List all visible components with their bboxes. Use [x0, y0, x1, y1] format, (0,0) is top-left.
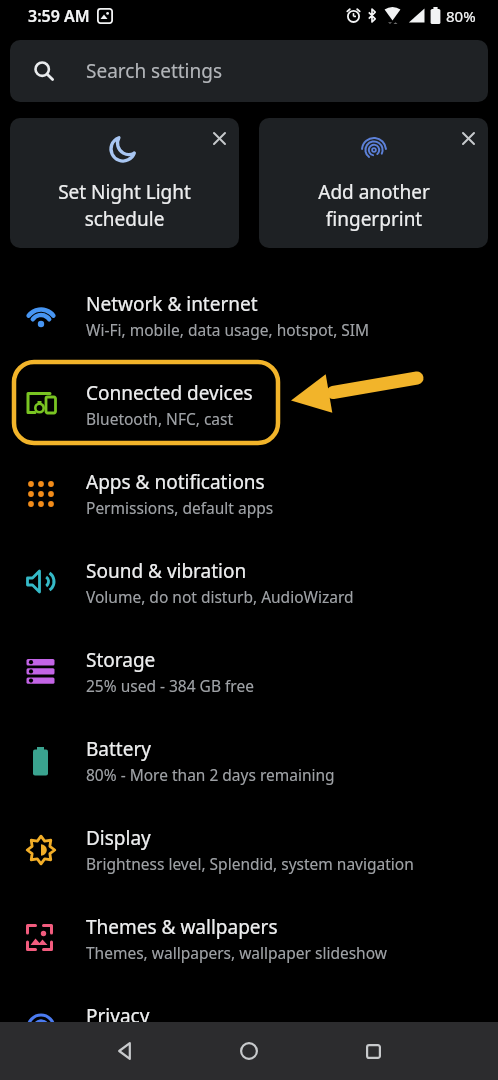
staticText: Set Night Light schedule [58, 179, 191, 232]
button[interactable] [186, 1022, 311, 1080]
staticText: 25% used - 384 GB free [86, 675, 254, 696]
button[interactable] [448, 118, 488, 158]
staticText: Network & internet [86, 291, 258, 317]
staticText: Brightness level, Splendid, system navig… [86, 853, 414, 874]
button[interactable] [199, 118, 239, 158]
staticText: Wi-Fi, mobile, data usage, hotspot, SIM [86, 319, 370, 340]
staticText: Themes & wallpapers [86, 914, 278, 940]
button[interactable]: Display [0, 805, 498, 894]
button[interactable]: Network & internet [0, 271, 498, 360]
button[interactable] [62, 1022, 186, 1080]
staticText: Add another fingerprint [318, 179, 430, 232]
staticText: 80% [446, 6, 476, 26]
button[interactable]: Apps & notifications [0, 449, 498, 538]
staticText: Storage [86, 647, 156, 673]
button[interactable]: Set Night Light schedule [10, 118, 239, 248]
staticText: 80% - More than 2 days remaining [86, 764, 335, 785]
button[interactable]: Search settings [10, 40, 488, 102]
button[interactable]: Battery [0, 716, 498, 805]
staticText: 3:59 AM [28, 5, 90, 27]
staticText: Privacy [86, 1003, 150, 1029]
staticText: Display [86, 825, 151, 851]
button[interactable]: Themes & wallpapers [0, 894, 498, 983]
button[interactable]: Privacy [0, 983, 498, 1072]
staticText: Sound & vibration [86, 558, 247, 584]
staticText: Battery [86, 736, 151, 762]
staticText: Bluetooth, NFC, cast [86, 408, 234, 429]
staticText: Connected devices [86, 380, 253, 406]
staticText: Volume, do not disturb, AudioWizard [86, 586, 354, 607]
staticText: Apps & notifications [86, 469, 265, 495]
staticText: Themes, wallpapers, wallpaper slideshow [86, 942, 387, 963]
button[interactable] [311, 1022, 436, 1080]
staticText: Permissions, account activity, personal … [86, 1031, 404, 1052]
button[interactable]: Add another fingerprint [259, 118, 488, 248]
staticText: Permissions, default apps [86, 497, 274, 518]
button[interactable]: Storage [0, 627, 498, 716]
button[interactable]: Sound & vibration [0, 538, 498, 627]
staticText: Search settings [86, 58, 223, 84]
button[interactable]: Connected devices [0, 360, 498, 449]
